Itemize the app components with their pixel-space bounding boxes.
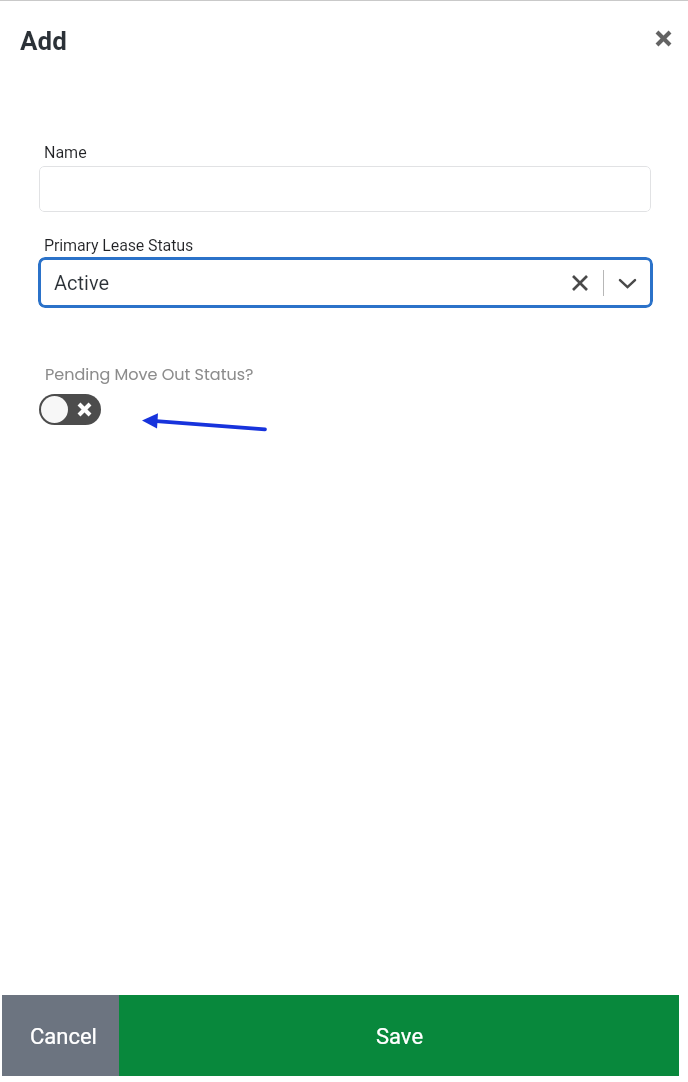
staticText: Active [54,271,110,294]
button[interactable]: Close [641,16,685,60]
button[interactable]: Save [119,995,679,1076]
staticText: Save [376,1024,424,1050]
button[interactable]: Active [38,257,653,308]
button[interactable]: Open dropdown [613,269,641,297]
button[interactable]: Cancel [2,995,119,1076]
button[interactable]: Clear [566,269,594,297]
staticText: Primary Lease Status [44,236,194,255]
staticText: Pending Move Out Status? [45,363,254,385]
staticText: Name [44,143,87,162]
staticText: Cancel [30,1024,97,1050]
staticText: Add [20,26,67,56]
button[interactable] [39,166,651,212]
button[interactable]: Pending Move Out Status toggle, off [39,394,101,425]
